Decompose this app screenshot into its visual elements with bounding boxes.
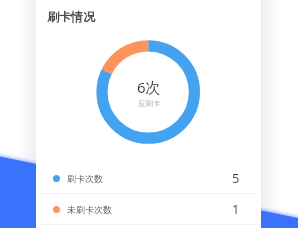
staticText: 刷卡次数	[67, 173, 103, 184]
staticText: 6次	[137, 77, 161, 97]
button[interactable]: 未刷卡次数	[36, 194, 261, 224]
staticText: 未刷卡次数	[67, 204, 112, 215]
staticText: 刷卡情况	[47, 9, 95, 24]
staticText: 5	[232, 169, 240, 187]
staticText: 应刷卡	[138, 99, 161, 108]
staticText: 1	[232, 200, 240, 218]
button[interactable]: 刷卡次数	[36, 163, 261, 193]
